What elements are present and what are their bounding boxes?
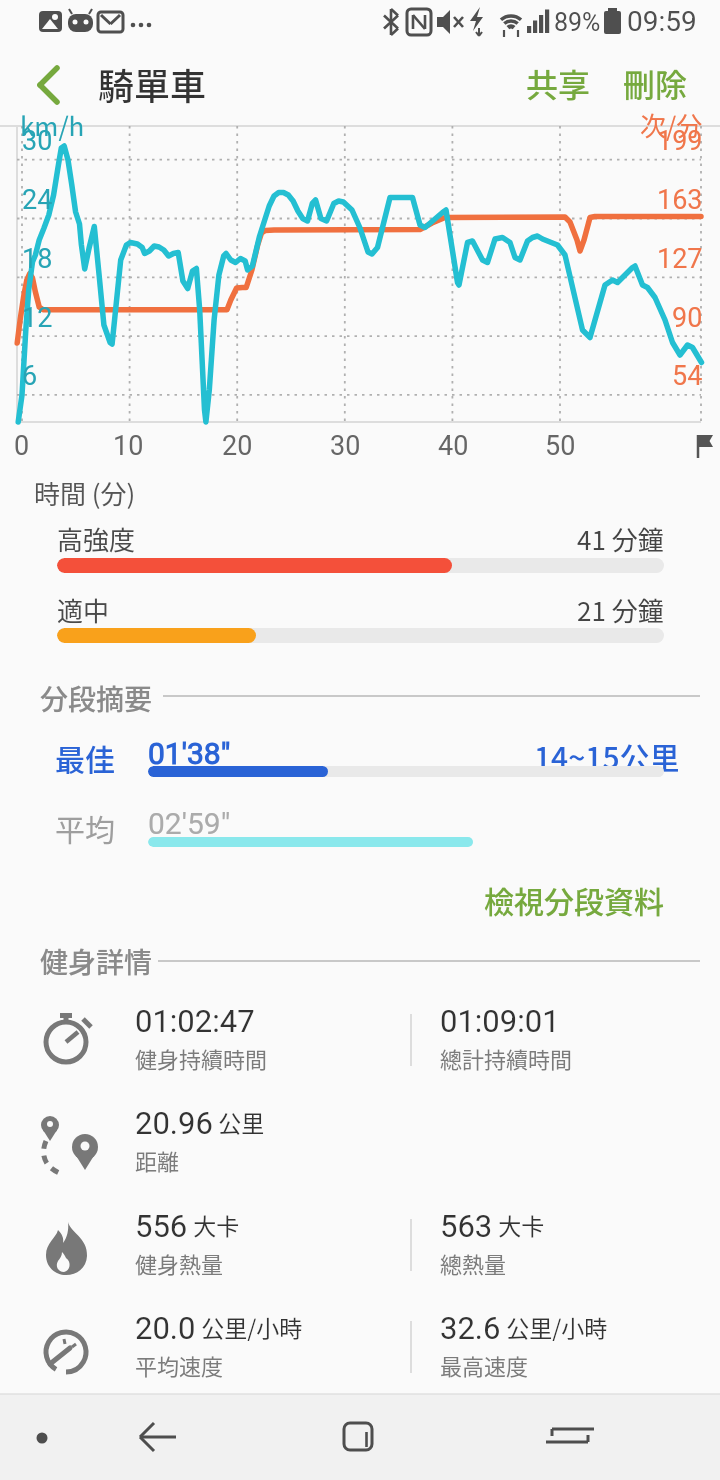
staticText: 50 [545,430,576,462]
staticText: 大卡 [188,1208,240,1241]
staticText: 18 [22,243,53,275]
staticText: 90 [672,302,703,334]
staticText: km/h [20,106,85,144]
staticText: 6 [22,360,38,392]
staticText: 平均 [55,806,115,849]
staticText: 01:02:47 [135,1003,255,1039]
staticText: 54 [672,360,703,392]
staticText: 21 分鐘 [577,591,664,629]
staticText: 公里/小時 [196,1310,303,1343]
staticText: 563 [440,1208,493,1244]
staticText: 30 [22,125,53,157]
staticText: 30 [330,430,361,462]
staticText: 01:09:01 [440,1003,560,1039]
staticText: 24 [22,184,53,216]
staticText: 最高速度 [440,1349,529,1381]
staticText: 健身持續時間 [135,1042,268,1074]
staticText: 199 [657,125,703,157]
staticText: 41 分鐘 [577,520,664,558]
staticText: 10 [113,430,144,462]
staticText: 總計持續時間 [440,1042,573,1074]
staticText: 89% [554,8,601,37]
staticText: 20 [222,430,253,462]
staticText: 09:59 [627,5,697,38]
staticText: 公里 [213,1105,265,1138]
staticText: 距離 [135,1144,180,1176]
staticText: 共享 [526,60,591,106]
button[interactable] [26,60,76,110]
staticText: 127 [657,243,703,275]
button[interactable] [110,1400,205,1475]
button[interactable] [310,1400,405,1475]
staticText: 檢視分段資料 [484,878,664,921]
button[interactable] [512,1400,607,1475]
staticText: 高強度 [57,520,136,558]
staticText: 平均速度 [135,1349,224,1381]
staticText: 556 [135,1208,188,1244]
staticText: 0 [14,430,30,462]
staticText: 02'59" [148,806,231,841]
staticText: 20.0 [135,1310,196,1346]
staticText: 分段摘要 [40,678,153,719]
staticText: 騎單車 [98,58,207,110]
button[interactable]: 刪除 [600,56,710,110]
staticText: 最佳 [55,736,115,779]
staticText: 刪除 [623,60,688,106]
staticText: 健身詳情 [40,941,153,982]
staticText: 公里/小時 [501,1310,608,1343]
staticText: 20.96 [135,1105,213,1141]
staticText: 適中 [57,591,110,629]
staticText: 總熱量 [440,1247,507,1279]
staticText: 健身熱量 [135,1247,224,1279]
staticText: 大卡 [493,1208,545,1241]
staticText: 14~15公里 [534,734,680,777]
staticText: 12 [22,302,53,334]
button[interactable]: 檢視分段資料 [484,876,664,922]
staticText: 01'38" [148,736,231,771]
staticText: 163 [657,184,703,216]
button[interactable]: 共享 [503,56,613,110]
staticText: 時間 (分) [34,474,136,512]
staticText: 次/分 [640,106,703,144]
staticText: 40 [438,430,469,462]
button[interactable] [10,1400,80,1475]
staticText: 32.6 [440,1310,501,1346]
